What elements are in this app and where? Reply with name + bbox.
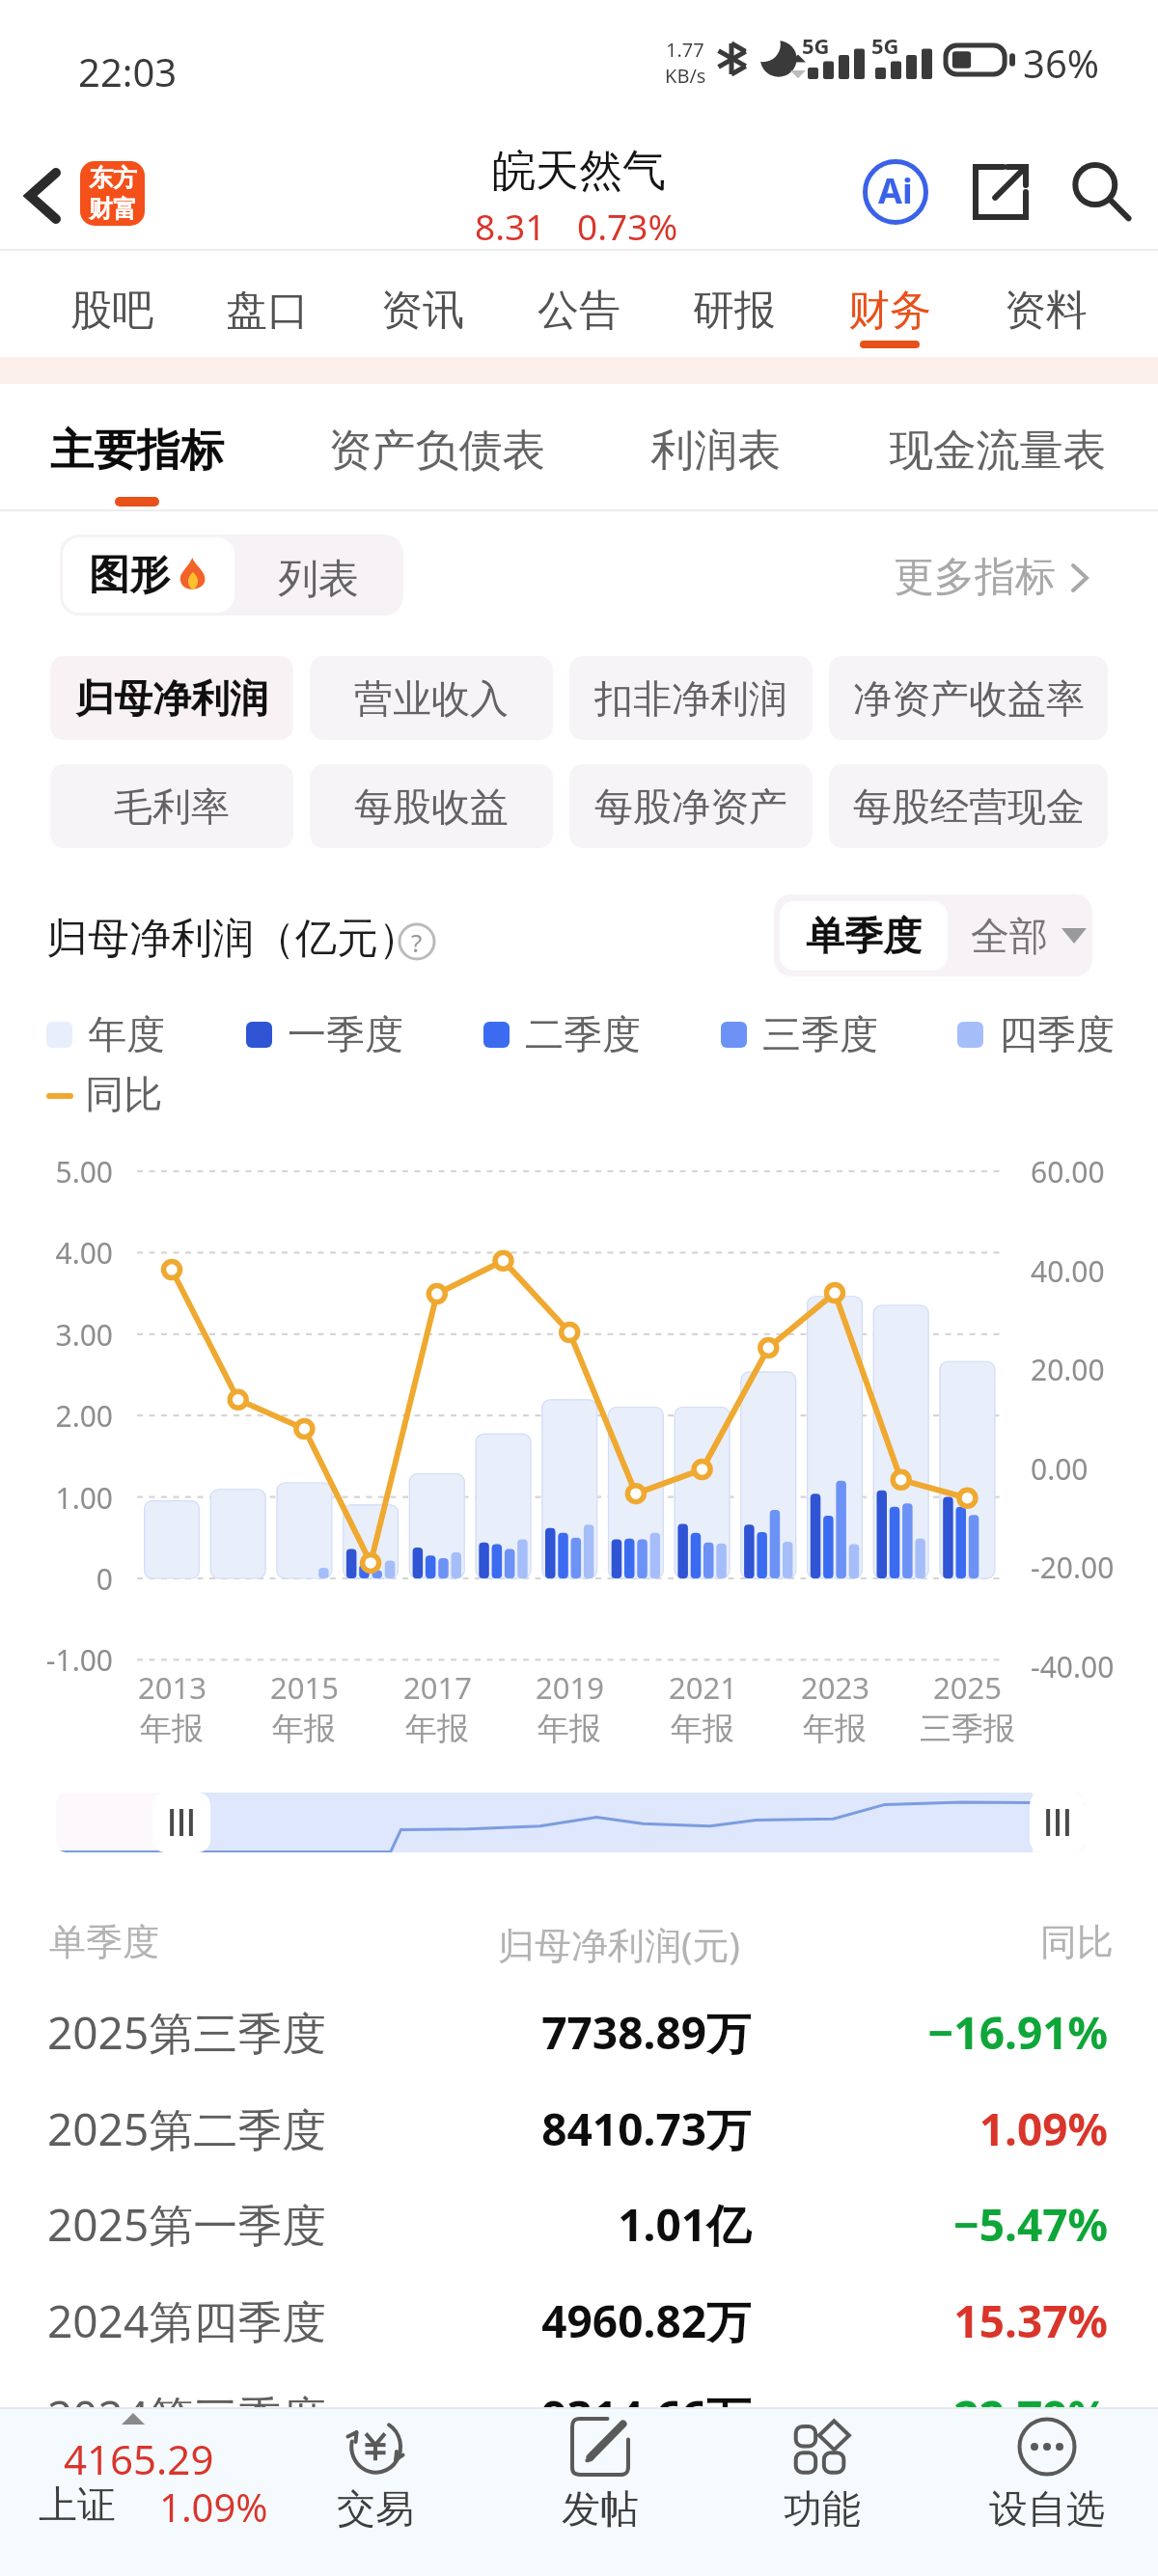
staticText: 15.37% — [0, 2290, 1108, 2351]
button[interactable]: Info — [397, 921, 437, 962]
staticText: 40.00 — [1031, 1251, 1105, 1291]
staticText: −5.47% — [0, 2194, 1108, 2255]
button[interactable]: 归母净利润 — [50, 656, 293, 740]
staticText: 更多指标 — [894, 552, 1056, 603]
staticText: 扣非净利润 — [594, 674, 787, 723]
staticText: 2013 — [138, 1667, 207, 1708]
staticText: 年报 — [140, 1709, 204, 1749]
button[interactable]: AI assistant — [831, 152, 960, 232]
staticText: 净资产收益率 — [853, 674, 1085, 723]
staticText: Ai — [878, 167, 913, 214]
button[interactable]: 2025第一季度 — [0, 2160, 1158, 2256]
staticText: 1.09% — [0, 2098, 1108, 2159]
staticText: 财务 — [813, 285, 967, 337]
staticText: 年报 — [272, 1709, 336, 1749]
staticText: 2025 — [933, 1667, 1002, 1708]
staticText: 7738.89万 — [0, 2002, 751, 2063]
staticText: 每股收益 — [354, 782, 509, 831]
button[interactable]: 扣非净利润 — [569, 656, 813, 740]
button[interactable]: 图形 — [63, 537, 234, 613]
staticText: 同比 — [0, 1919, 1114, 1965]
button[interactable]: 2025第三季度 — [0, 1968, 1158, 2064]
staticText: 年报 — [538, 1709, 601, 1749]
button[interactable]: 交易 — [267, 2407, 483, 2576]
staticText: 5G — [802, 31, 830, 60]
button[interactable]: 资产负债表 — [312, 384, 563, 509]
staticText: 股吧 — [35, 285, 189, 337]
staticText: 4.00 — [0, 1233, 113, 1273]
button[interactable]: 每股收益 — [310, 764, 553, 848]
button[interactable]: 财务 — [813, 253, 967, 357]
staticText: 22:03 — [78, 45, 178, 97]
staticText: 60.00 — [1031, 1152, 1105, 1192]
staticText: 毛利率 — [114, 782, 230, 831]
button[interactable]: 资料 — [969, 253, 1123, 357]
staticText: −16.91% — [0, 2002, 1108, 2063]
button[interactable]: Search — [1059, 152, 1144, 232]
button[interactable]: 发帖 — [492, 2407, 708, 2576]
staticText: 2.00 — [0, 1396, 113, 1436]
button[interactable]: 设自选 — [939, 2407, 1155, 2576]
staticText: 1.09% — [159, 2480, 268, 2533]
staticText: 上证 — [39, 2480, 116, 2529]
staticText: 列表 — [236, 554, 400, 605]
button[interactable]: 盘口 — [190, 253, 345, 357]
staticText: 5G — [871, 31, 899, 60]
button[interactable]: 更多指标 — [894, 552, 1089, 603]
button[interactable]: Range end — [1030, 1793, 1086, 1852]
staticText: 3.00 — [0, 1315, 113, 1355]
staticText: 主要指标 — [31, 424, 243, 479]
staticText: 单季度 — [806, 912, 922, 960]
staticText: 2019 — [536, 1667, 604, 1708]
staticText: 皖天然气 — [0, 144, 1158, 199]
button[interactable]: 现金流量表 — [872, 384, 1123, 509]
staticText: 2025第三季度 — [47, 2002, 327, 2063]
button[interactable]: 2024第四季度 — [0, 2257, 1158, 2352]
button[interactable]: Back — [4, 159, 81, 233]
button[interactable]: 2024第三季度 — [0, 2352, 1158, 2448]
button[interactable]: Range start — [152, 1793, 210, 1852]
button[interactable]: 研报 — [657, 253, 812, 357]
staticText: 设自选 — [939, 2484, 1155, 2533]
staticText: 36% — [1023, 37, 1099, 89]
button[interactable]: 每股净资产 — [569, 764, 813, 848]
button[interactable]: 2025第二季度 — [0, 2065, 1158, 2160]
button[interactable]: 列表 — [236, 537, 400, 613]
staticText: 东方 — [89, 163, 137, 193]
button[interactable]: 公告 — [502, 253, 656, 357]
button[interactable]: 功能 — [714, 2407, 930, 2576]
button[interactable]: 每股经营现金 — [829, 764, 1108, 848]
staticText: 发帖 — [492, 2484, 708, 2533]
staticText: −22.79% — [0, 2386, 1108, 2447]
staticText: 每股净资产 — [594, 782, 787, 831]
staticText: 1.00 — [0, 1478, 113, 1518]
button[interactable]: 全部 — [971, 901, 1087, 971]
button[interactable]: East Money home — [80, 161, 145, 226]
staticText: 0.73% — [577, 202, 678, 250]
button[interactable]: 利润表 — [629, 384, 803, 509]
button[interactable]: 营业收入 — [310, 656, 553, 740]
staticText: 归母净利润(元) — [498, 1919, 740, 1969]
staticText: 4960.82万 — [0, 2290, 751, 2351]
staticText: 2023 — [801, 1667, 869, 1708]
staticText: 2015 — [270, 1667, 339, 1708]
staticText: 二季度 — [525, 1010, 641, 1058]
staticText: 交易 — [267, 2484, 483, 2533]
staticText: 每股经营现金 — [853, 782, 1085, 831]
staticText: 年度 — [88, 1010, 165, 1058]
button[interactable]: 主要指标 — [31, 384, 243, 509]
button[interactable]: 股吧 — [35, 253, 189, 357]
staticText: 功能 — [714, 2484, 930, 2533]
button[interactable]: 净资产收益率 — [829, 656, 1108, 740]
staticText: 年报 — [803, 1709, 867, 1749]
button[interactable]: 毛利率 — [50, 764, 293, 848]
staticText: 2024第三季度 — [47, 2386, 327, 2447]
staticText: 全部 — [971, 912, 1048, 960]
staticText: 8410.73万 — [0, 2098, 751, 2159]
button[interactable]: Share — [960, 152, 1041, 232]
button[interactable]: 单季度 — [780, 901, 948, 971]
button[interactable]: 资讯 — [345, 253, 500, 357]
staticText: 资料 — [969, 285, 1123, 337]
button[interactable]: Shanghai index — [0, 2407, 289, 2576]
staticText: 2021 — [669, 1667, 737, 1708]
